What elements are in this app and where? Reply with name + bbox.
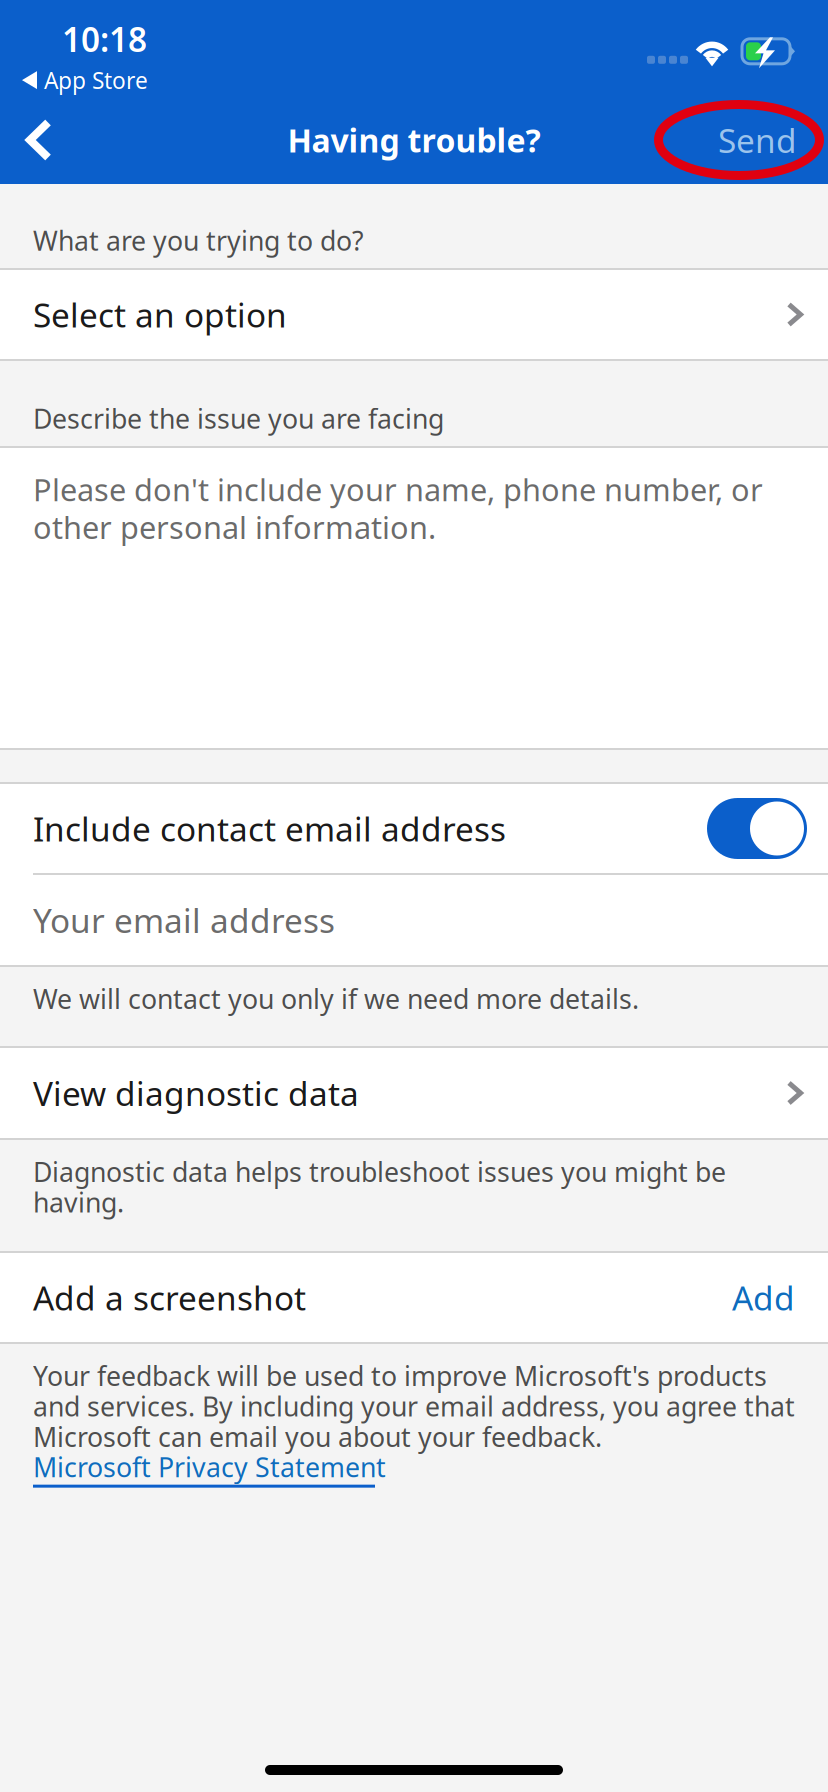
button[interactable]: Add [732,1275,795,1320]
button[interactable]: View diagnostic data [0,1048,828,1138]
button[interactable]: Include contact email address [707,798,795,859]
staticText: Microsoft Privacy Statement [33,1449,386,1485]
staticText: App Store [44,65,148,95]
staticText: Select an option [33,292,287,337]
button[interactable]: Microsoft Privacy Statement [33,1449,386,1488]
staticText: Describe the issue you are facing [33,401,444,436]
staticText: Your feedback will be used to improve Mi… [33,1358,795,1454]
button[interactable]: Back [0,96,110,184]
button[interactable]: Select an option [0,270,828,359]
staticText: Send [718,118,797,162]
staticText: We will contact you only if we need more… [33,981,639,1016]
staticText: Add [732,1275,795,1320]
staticText: Your email address [33,898,335,942]
staticText: 10:18 [62,17,147,61]
staticText: Add a screenshot [33,1275,306,1320]
staticText: Having trouble? [287,119,540,161]
staticText: Diagnostic data helps troubleshoot issue… [33,1154,726,1220]
staticText: What are you trying to do? [33,223,364,258]
staticText: Please don't include your name, phone nu… [33,469,763,547]
staticText: View diagnostic data [33,1071,359,1115]
staticText: Include contact email address [33,806,506,851]
button[interactable]: Your email address [0,875,828,965]
button[interactable]: Send [654,96,828,184]
